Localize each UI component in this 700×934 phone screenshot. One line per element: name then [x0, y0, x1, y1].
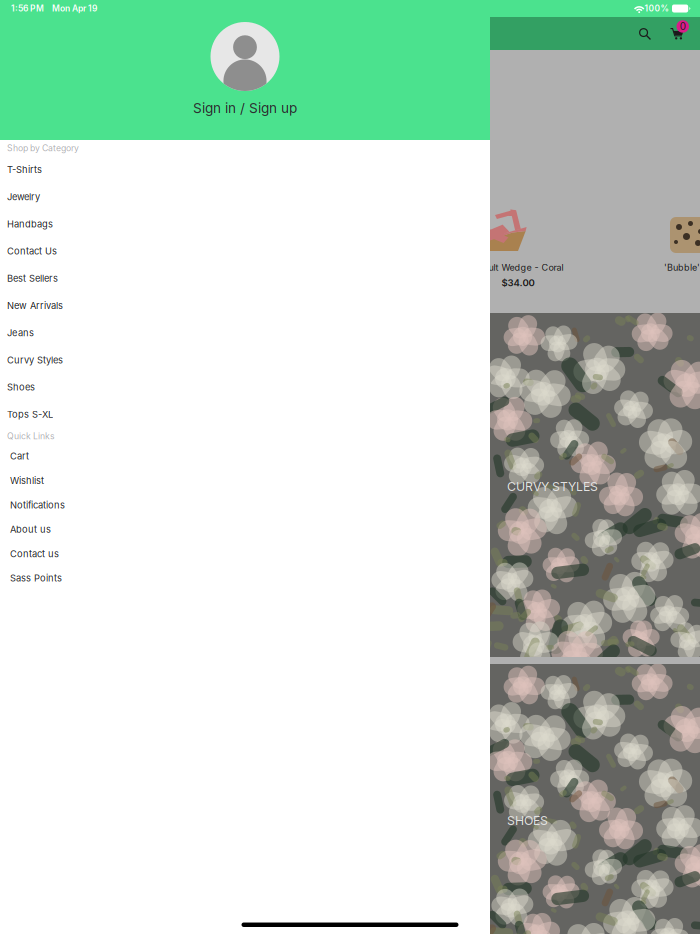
button[interactable]: Handbags — [0, 210, 490, 238]
staticText: Contact us — [10, 548, 59, 559]
staticText: Result Wedge - Coral — [472, 262, 563, 273]
staticText: New Arrivals — [7, 300, 63, 311]
button[interactable]: Best Sellers — [0, 265, 490, 292]
button[interactable]: About us — [0, 517, 490, 542]
button[interactable]: Cart, 0 items — [666, 17, 691, 50]
staticText: CURVY STYLES — [507, 479, 598, 494]
staticText: $34.00 — [501, 277, 534, 289]
staticText: 'Bubble' — [664, 262, 700, 273]
staticText: SHOES — [507, 813, 548, 828]
button[interactable]: Search — [632, 17, 658, 50]
button[interactable]: Tops S-XL — [0, 401, 490, 428]
staticText: 0 — [680, 20, 686, 32]
button[interactable]: Jeans — [0, 319, 490, 346]
button[interactable]: Sass Points — [0, 566, 490, 590]
button[interactable]: Contact Us — [0, 238, 490, 265]
button[interactable]: Notifications — [0, 493, 490, 517]
button[interactable]: Cart — [0, 444, 490, 468]
button[interactable]: T-Shirts — [0, 156, 490, 183]
staticText: 100% — [644, 3, 668, 14]
button[interactable]: Jewelry — [0, 183, 490, 210]
staticText: About us — [10, 524, 51, 535]
staticText: Contact Us — [7, 246, 57, 257]
staticText: T-Shirts — [7, 164, 42, 175]
staticText: Curvy Styles — [7, 354, 63, 366]
staticText: Tops S-XL — [7, 409, 53, 420]
button[interactable]: Wishlist — [0, 468, 490, 493]
button[interactable]: New Arrivals — [0, 292, 490, 319]
button[interactable]: Sign in / Sign up — [0, 100, 490, 116]
staticText: 1:56 PM — [11, 3, 44, 14]
staticText: Jewelry — [7, 191, 40, 202]
staticText: Sass Points — [10, 573, 62, 584]
staticText: Cart — [10, 451, 29, 462]
staticText: Shop by Category — [7, 143, 79, 153]
staticText: Best Sellers — [7, 273, 58, 284]
button[interactable]: Shoes — [0, 374, 490, 401]
staticText: Handbags — [7, 218, 53, 230]
staticText: Quick Links — [7, 431, 55, 441]
button[interactable]: Curvy Styles — [0, 346, 490, 374]
staticText: Shoes — [7, 382, 35, 393]
staticText: Sign in / Sign up — [193, 100, 297, 116]
staticText: Wishlist — [10, 475, 44, 486]
staticText: Jeans — [7, 327, 34, 338]
button[interactable]: Contact us — [0, 542, 490, 566]
staticText: Mon Apr 19 — [52, 3, 97, 14]
staticText: Notifications — [10, 499, 65, 511]
